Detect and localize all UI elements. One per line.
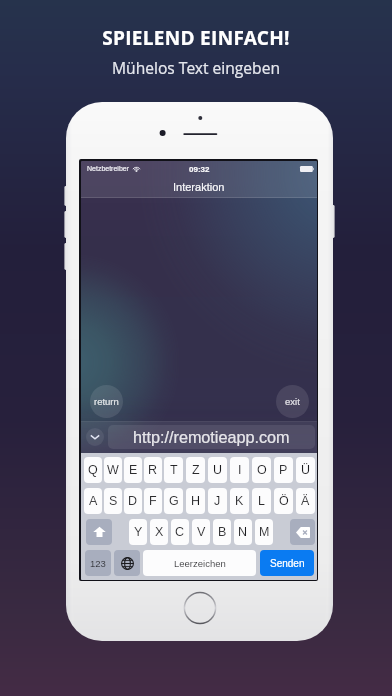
button[interactable]: Senden bbox=[260, 550, 314, 576]
staticText: F bbox=[149, 494, 157, 508]
button[interactable]: U bbox=[208, 457, 227, 483]
button[interactable]: W bbox=[104, 457, 122, 483]
staticText: Interaktion bbox=[173, 181, 225, 193]
button[interactable]: C bbox=[171, 519, 189, 545]
staticText: Netzbetreiber bbox=[87, 165, 130, 173]
button[interactable]: Q bbox=[84, 457, 102, 483]
button[interactable]: Leerzeichen bbox=[143, 550, 256, 576]
button[interactable]: I bbox=[230, 457, 249, 483]
staticText: G bbox=[169, 494, 179, 508]
button[interactable]: T bbox=[164, 457, 183, 483]
staticText: K bbox=[235, 494, 244, 508]
button[interactable]: Backspace bbox=[290, 519, 315, 545]
button[interactable]: B bbox=[213, 519, 231, 545]
staticText: C bbox=[175, 525, 185, 539]
staticText: return bbox=[94, 396, 119, 407]
staticText: 09:32 bbox=[189, 165, 210, 174]
staticText: 123 bbox=[90, 558, 106, 569]
staticText: X bbox=[155, 525, 164, 539]
button[interactable]: H bbox=[186, 488, 205, 514]
button[interactable]: N bbox=[234, 519, 252, 545]
button[interactable]: S bbox=[104, 488, 122, 514]
button[interactable]: R bbox=[144, 457, 162, 483]
staticText: Leerzeichen bbox=[174, 558, 226, 569]
button[interactable]: P bbox=[274, 457, 293, 483]
button[interactable]: O bbox=[252, 457, 271, 483]
staticText: T bbox=[170, 463, 178, 477]
staticText: SPIELEND EINFACH! bbox=[102, 25, 290, 51]
button[interactable]: V bbox=[192, 519, 210, 545]
button[interactable]: Ä bbox=[296, 488, 315, 514]
staticText: U bbox=[213, 463, 223, 477]
staticText: Ä bbox=[301, 494, 310, 508]
button[interactable]: X bbox=[150, 519, 168, 545]
button[interactable]: E bbox=[124, 457, 142, 483]
button[interactable]: M bbox=[255, 519, 273, 545]
staticText: exit bbox=[285, 396, 300, 407]
button[interactable]: F bbox=[144, 488, 162, 514]
button[interactable]: D bbox=[124, 488, 142, 514]
staticText: D bbox=[128, 494, 138, 508]
button[interactable]: http://remotieapp.com bbox=[108, 425, 315, 449]
staticText: N bbox=[238, 525, 248, 539]
button[interactable]: exit bbox=[276, 385, 309, 418]
button[interactable]: Hide keyboard bbox=[86, 428, 104, 446]
staticText: J bbox=[214, 494, 221, 508]
staticText: Ü bbox=[301, 463, 311, 477]
staticText: Mühelos Text eingeben bbox=[112, 57, 280, 78]
button[interactable]: Ö bbox=[274, 488, 293, 514]
staticText: A bbox=[89, 494, 98, 508]
staticText: P bbox=[279, 463, 288, 477]
staticText: L bbox=[258, 494, 265, 508]
staticText: O bbox=[257, 463, 267, 477]
staticText: V bbox=[197, 525, 206, 539]
button[interactable]: return bbox=[90, 385, 123, 418]
button[interactable]: Ü bbox=[296, 457, 315, 483]
staticText: Z bbox=[192, 463, 200, 477]
staticText: Ö bbox=[279, 494, 289, 508]
button[interactable]: Shift bbox=[86, 519, 112, 545]
staticText: M bbox=[259, 525, 270, 539]
button[interactable]: A bbox=[84, 488, 102, 514]
button[interactable]: J bbox=[208, 488, 227, 514]
button[interactable]: Change keyboard bbox=[114, 550, 140, 576]
button[interactable]: 123 bbox=[85, 550, 111, 576]
staticText: B bbox=[218, 525, 227, 539]
staticText: S bbox=[109, 494, 118, 508]
staticText: Q bbox=[88, 463, 98, 477]
button[interactable]: L bbox=[252, 488, 271, 514]
staticText: http://remotieapp.com bbox=[133, 428, 290, 446]
staticText: W bbox=[107, 463, 119, 477]
staticText: H bbox=[191, 494, 201, 508]
button[interactable]: K bbox=[230, 488, 249, 514]
staticText: Senden bbox=[270, 558, 305, 569]
staticText: R bbox=[148, 463, 158, 477]
staticText: I bbox=[238, 463, 242, 477]
button[interactable]: G bbox=[164, 488, 183, 514]
button[interactable]: Y bbox=[129, 519, 147, 545]
staticText: E bbox=[129, 463, 138, 477]
button[interactable]: Z bbox=[186, 457, 205, 483]
staticText: Y bbox=[134, 525, 143, 539]
